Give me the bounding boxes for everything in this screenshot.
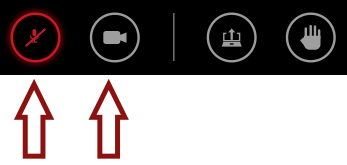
button[interactable]: Stop video — [83, 5, 147, 69]
button[interactable]: Unmute — [3, 5, 67, 69]
button[interactable]: Share screen — [200, 5, 264, 69]
button[interactable]: Raise hand — [279, 5, 343, 69]
